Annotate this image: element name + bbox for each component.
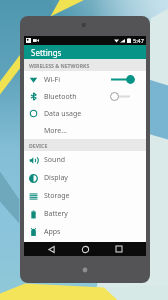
staticText: Sound bbox=[44, 155, 66, 165]
button[interactable]: Recent apps bbox=[112, 242, 126, 256]
button[interactable]: Back bbox=[44, 242, 58, 256]
button[interactable]: Sound bbox=[24, 151, 146, 169]
staticText: Settings bbox=[31, 47, 62, 58]
button[interactable]: Wi-Fi bbox=[24, 71, 146, 88]
staticText: Apps bbox=[44, 227, 61, 237]
button[interactable]: Storage bbox=[24, 187, 146, 205]
staticText: Display bbox=[44, 173, 68, 183]
staticText: Storage bbox=[44, 191, 70, 201]
button[interactable]: Display bbox=[24, 169, 146, 187]
button[interactable]: Data usage bbox=[24, 105, 146, 122]
button[interactable]: More... bbox=[24, 122, 146, 139]
staticText: DEVICE bbox=[29, 142, 48, 149]
button[interactable]: Bluetooth bbox=[24, 88, 146, 105]
staticText: 5:47 bbox=[133, 37, 144, 44]
staticText: Wi-Fi bbox=[44, 75, 61, 85]
staticText: Data usage bbox=[44, 109, 82, 119]
staticText: More... bbox=[44, 126, 67, 136]
staticText: WIRELESS & NETWORKS bbox=[29, 62, 90, 69]
staticText: Battery bbox=[44, 209, 68, 219]
button[interactable]: Apps bbox=[24, 223, 146, 241]
button[interactable]: Battery bbox=[24, 205, 146, 223]
staticText: Bluetooth bbox=[44, 92, 77, 102]
button[interactable]: Home bbox=[78, 242, 92, 256]
